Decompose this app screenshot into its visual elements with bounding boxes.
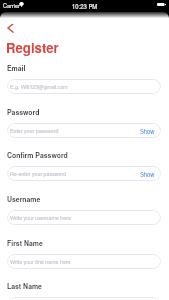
button[interactable]: E.g. Will123@gmail.com [7, 79, 161, 94]
button[interactable]: Re-enter your password [7, 166, 161, 181]
button[interactable]: Show [140, 170, 155, 178]
staticText: Register [6, 38, 59, 57]
staticText: Username [7, 194, 41, 204]
button[interactable]: Write your last name here [7, 297, 161, 300]
staticText: Password [7, 107, 40, 117]
staticText: 10:23 PM [72, 2, 98, 10]
button[interactable]: Back [3, 21, 17, 35]
staticText: Email [7, 63, 26, 73]
staticText: Show [140, 127, 155, 135]
button[interactable]: Write your username here [7, 210, 161, 225]
staticText: Last Name [7, 281, 42, 291]
staticText: Carrier [3, 2, 20, 10]
staticText: Show [140, 170, 155, 178]
button[interactable]: Enter your password [7, 123, 161, 138]
staticText: Confirm Password [7, 150, 68, 160]
staticText: Enter your password [10, 127, 59, 135]
staticText: Write your first name here [10, 258, 71, 266]
staticText: Write your username here [10, 214, 71, 222]
button[interactable]: Write your first name here [7, 254, 161, 269]
staticText: Re-enter your password [10, 170, 67, 178]
button[interactable]: Show [140, 127, 155, 135]
staticText: First Name [7, 238, 43, 248]
staticText: E.g. Will123@gmail.com [10, 83, 68, 91]
